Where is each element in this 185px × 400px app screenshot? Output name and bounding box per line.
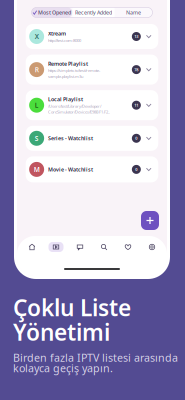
staticText: http://test.com:8000 [48,38,81,43]
button[interactable]: R [26,55,158,85]
button[interactable]: Name [114,7,152,17]
staticText: 0 [135,136,137,141]
button[interactable]: Favorites [116,239,140,254]
button[interactable]: Messages [68,239,92,254]
staticText: Birden fazla IPTV listesi arasında [13,351,178,365]
staticText: /Users/test/Library/Developer/ [48,103,101,109]
button[interactable]: X [26,24,158,49]
staticText: 13 [134,34,138,39]
staticText: Series - Watchlist [48,135,93,142]
staticText: 11 [134,102,138,108]
button[interactable]: Add playlist [141,211,159,230]
button[interactable]: Recently Added [72,7,114,17]
staticText: R [35,65,39,74]
staticText: Remote Playlist [48,60,88,67]
staticText: Recently Added [75,9,112,16]
staticText: Name [126,9,141,16]
button[interactable]: Live TV [44,239,68,254]
staticText: 78 [134,67,138,72]
staticText: https://simpletv.tv/test/remote- [48,68,100,73]
staticText: 0 [135,167,137,172]
staticText: S [35,134,39,143]
staticText: M [34,165,40,174]
staticText: Yönetimi [13,317,110,347]
staticText: kolayca geçiş yapın. [13,361,113,375]
staticText: L [35,101,39,110]
button[interactable]: Settings [140,239,164,254]
staticText: sample-playlist.m3u [48,74,83,79]
button[interactable]: Search [92,239,116,254]
staticText: Xtream [48,30,66,37]
staticText: Çoklu Liste [13,292,131,322]
button[interactable]: M [26,156,158,182]
button[interactable]: L [26,90,158,120]
button[interactable]: S [26,126,158,151]
button[interactable]: Home [20,239,44,254]
staticText: Most Opened [38,9,71,16]
staticText: X [35,32,39,41]
staticText: Local Playlist [48,96,83,103]
staticText: CoreSimulator/Devices/E98BF1-F2.. [48,109,110,115]
staticText: Movie - Watchlist [48,166,93,173]
button[interactable]: Most Opened [31,7,72,17]
